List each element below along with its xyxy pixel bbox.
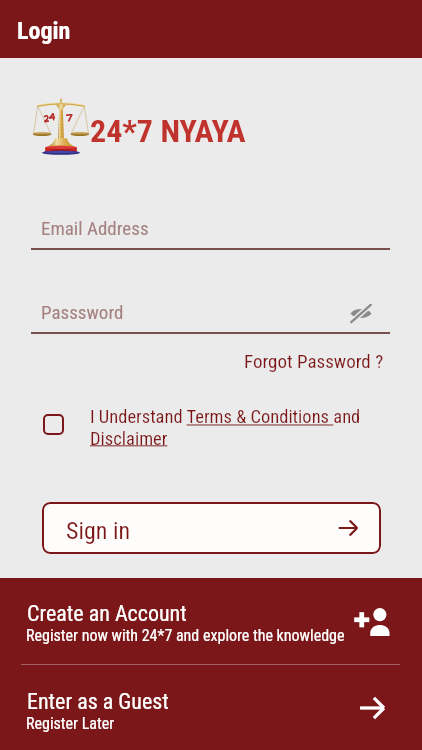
staticText: Sign in <box>66 517 131 545</box>
staticText: Login <box>17 17 71 45</box>
staticText: 24*7 NYAYA <box>90 112 246 150</box>
staticText: Register Later <box>26 714 115 733</box>
button[interactable]: Forgot Password ? <box>238 346 390 376</box>
staticText: Create an Account <box>27 601 187 627</box>
staticText: I Understand Terms & Conditions and Disc… <box>90 406 365 449</box>
button[interactable]: Create an Account <box>0 578 422 663</box>
button[interactable]: Show password <box>341 293 381 333</box>
button[interactable]: Sign in <box>42 502 381 554</box>
staticText: Email Address <box>41 217 149 239</box>
staticText: Register now with 24*7 and explore the k… <box>26 626 345 645</box>
staticText: Enter as a Guest <box>27 689 169 715</box>
staticText: Forgot Password ? <box>244 350 384 372</box>
button[interactable]: Enter as a Guest <box>0 664 422 750</box>
button[interactable]: Accept terms and conditions <box>43 414 64 435</box>
staticText: Passsword <box>41 301 124 323</box>
